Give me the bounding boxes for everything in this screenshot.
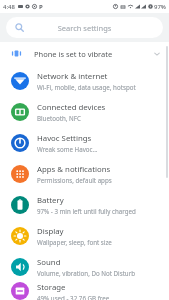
staticText: Phone is set to vibrate — [34, 49, 113, 59]
staticText: 4:48 — [3, 3, 15, 11]
staticText: Display — [37, 226, 64, 237]
button[interactable]: Search — [6, 17, 163, 38]
staticText: Storage — [37, 282, 66, 293]
button[interactable]: Havoc Settings — [0, 127, 169, 158]
staticText: 49% used - 32.76 GB free — [37, 294, 110, 300]
button[interactable]: Phone is set to vibrate — [0, 42, 169, 65]
staticText: Network & internet — [37, 71, 108, 82]
staticText: Volume, vibration, Do Not Disturb — [37, 269, 136, 277]
staticText: Search settings — [24, 23, 145, 33]
staticText: Wreak some Havoc... — [37, 145, 98, 153]
other: Expand — [153, 50, 161, 58]
other: Search — [15, 23, 24, 32]
staticText: Permissions, default apps — [37, 176, 112, 184]
other: Connected devices — [11, 103, 29, 121]
button[interactable]: Battery — [0, 189, 169, 220]
other: Display — [11, 227, 29, 245]
button[interactable]: Connected devices — [0, 96, 169, 127]
button[interactable]: Network and internet — [0, 65, 169, 96]
staticText: P — [39, 3, 43, 11]
staticText: Connected devices — [37, 102, 106, 113]
button[interactable]: Sound — [0, 251, 169, 282]
other: Apps and notifications — [11, 165, 29, 183]
other: Havoc Settings — [11, 134, 29, 152]
other: Network and internet — [11, 72, 29, 90]
other: Storage — [11, 282, 29, 300]
staticText: Havoc Settings — [37, 133, 92, 144]
staticText: Wallpaper, sleep, font size — [37, 238, 112, 246]
button[interactable]: Display — [0, 220, 169, 251]
button[interactable]: Storage — [0, 282, 169, 300]
staticText: 97% - 3 min left until fully charged — [37, 207, 136, 215]
button[interactable]: Apps and notifications — [0, 158, 169, 189]
staticText: 97% — [154, 3, 166, 11]
staticText: Apps & notifications — [37, 164, 111, 175]
other: Battery — [11, 196, 29, 214]
staticText: Sound — [37, 257, 61, 268]
staticText: Wi-Fi, mobile, data usage, hotspot — [37, 83, 136, 91]
other: Sound — [11, 258, 29, 276]
staticText: Battery — [37, 195, 64, 206]
staticText: Bluetooth, NFC — [37, 114, 81, 122]
